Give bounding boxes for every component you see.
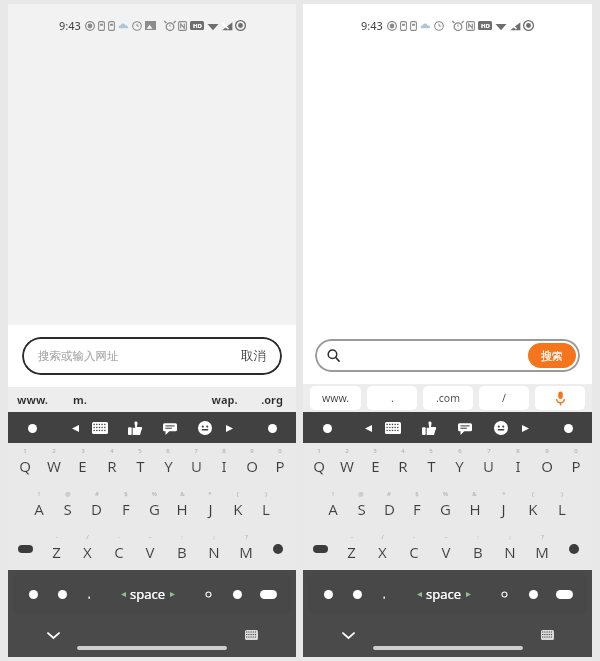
button[interactable]: !	[24, 490, 53, 519]
button[interactable]: Shift	[305, 536, 336, 562]
button[interactable]: 0	[561, 447, 590, 476]
button[interactable]: Shift	[10, 536, 41, 562]
button[interactable]: Switch keyboard	[240, 624, 262, 646]
button[interactable]: More	[317, 418, 337, 438]
button[interactable]: @	[347, 490, 375, 519]
button[interactable]	[195, 573, 222, 615]
button[interactable]: ，	[77, 573, 100, 615]
button[interactable]: Symbols	[19, 573, 48, 615]
button[interactable]: wap.	[200, 387, 248, 412]
button[interactable]: 6	[154, 447, 182, 476]
button[interactable]: 搜索	[528, 343, 576, 368]
button[interactable]: (	[518, 490, 547, 519]
button[interactable]: Period	[518, 573, 548, 615]
button[interactable]: ~	[134, 533, 166, 562]
button[interactable]: Keyboard layout	[382, 417, 404, 439]
button[interactable]: Enter	[548, 573, 581, 615]
button[interactable]: *	[196, 490, 224, 519]
button[interactable]: .org	[248, 387, 296, 412]
button[interactable]: &	[168, 490, 196, 519]
button[interactable]: ?	[526, 533, 558, 562]
button[interactable]: Search	[315, 339, 580, 372]
button[interactable]: Settings	[558, 418, 578, 438]
button[interactable]: Thumbs up	[418, 417, 440, 439]
button[interactable]: Previous	[360, 420, 376, 436]
button[interactable]: www.	[310, 386, 361, 410]
button[interactable]: 8	[210, 447, 238, 476]
button[interactable]: Backspace	[558, 536, 590, 562]
button[interactable]: Emoji	[490, 417, 512, 439]
button[interactable]: 7	[474, 447, 503, 476]
button[interactable]: Enter	[252, 573, 285, 615]
button[interactable]: Next	[221, 420, 237, 436]
button[interactable]: 3	[361, 447, 389, 476]
button[interactable]: @	[53, 490, 82, 519]
button[interactable]: #	[375, 490, 403, 519]
button[interactable]: ;	[494, 533, 526, 562]
button[interactable]: 4	[389, 447, 417, 476]
button[interactable]: Symbols	[314, 573, 343, 615]
button[interactable]: )	[547, 490, 576, 519]
button[interactable]: -	[41, 533, 72, 562]
button[interactable]: #	[82, 490, 111, 519]
button[interactable]: More	[22, 418, 42, 438]
button[interactable]: *	[489, 490, 518, 519]
button[interactable]: Settings	[262, 418, 282, 438]
button[interactable]: ?	[230, 533, 262, 562]
button[interactable]: /	[72, 533, 103, 562]
button[interactable]: 0	[266, 447, 294, 476]
button[interactable]: m.	[56, 387, 104, 412]
button[interactable]: %	[431, 490, 460, 519]
button[interactable]: %	[140, 490, 168, 519]
button[interactable]: space	[396, 573, 491, 615]
button[interactable]: &	[460, 490, 489, 519]
button[interactable]: Hide keyboard	[337, 624, 359, 646]
button[interactable]: Keyboard layout	[89, 417, 111, 439]
button[interactable]: ，	[372, 573, 396, 615]
button[interactable]: :	[462, 533, 494, 562]
button[interactable]: 9	[238, 447, 266, 476]
button[interactable]: Voice search	[535, 386, 585, 410]
button[interactable]: )	[252, 490, 280, 519]
button[interactable]: Messages	[159, 417, 181, 439]
button[interactable]: ;	[198, 533, 230, 562]
button[interactable]: 8	[503, 447, 532, 476]
button[interactable]: 3	[68, 447, 97, 476]
button[interactable]: 1	[305, 447, 333, 476]
button[interactable]: Backspace	[262, 536, 294, 562]
button[interactable]: space	[100, 573, 195, 615]
button[interactable]: 搜索或输入网址	[22, 337, 282, 375]
button[interactable]: .com	[423, 386, 473, 410]
button[interactable]: Switch keyboard	[536, 624, 558, 646]
button[interactable]: 2	[333, 447, 361, 476]
button[interactable]: 6	[445, 447, 474, 476]
button[interactable]: /	[367, 533, 398, 562]
button[interactable]: 1	[10, 447, 39, 476]
button[interactable]: 7	[182, 447, 210, 476]
button[interactable]: Language	[48, 573, 77, 615]
button[interactable]: 5	[126, 447, 154, 476]
button[interactable]: Period	[222, 573, 252, 615]
button[interactable]: (	[224, 490, 252, 519]
button[interactable]	[491, 573, 518, 615]
button[interactable]: 5	[417, 447, 445, 476]
button[interactable]: Thumbs up	[124, 417, 146, 439]
button[interactable]: Next	[517, 420, 533, 436]
button[interactable]: Emoji	[194, 417, 216, 439]
button[interactable]: Hide keyboard	[42, 624, 64, 646]
button[interactable]: -	[336, 533, 367, 562]
button[interactable]: ~	[430, 533, 462, 562]
button[interactable]: $	[403, 490, 431, 519]
button[interactable]: 2	[39, 447, 68, 476]
button[interactable]: 9	[532, 447, 561, 476]
button[interactable]: Previous	[67, 420, 83, 436]
button[interactable]: Language	[343, 573, 372, 615]
button[interactable]: Messages	[454, 417, 476, 439]
button[interactable]: www.	[8, 387, 56, 412]
button[interactable]: $	[111, 490, 140, 519]
button[interactable]: ·	[398, 533, 430, 562]
button[interactable]: 4	[97, 447, 126, 476]
button[interactable]: ·	[103, 533, 134, 562]
